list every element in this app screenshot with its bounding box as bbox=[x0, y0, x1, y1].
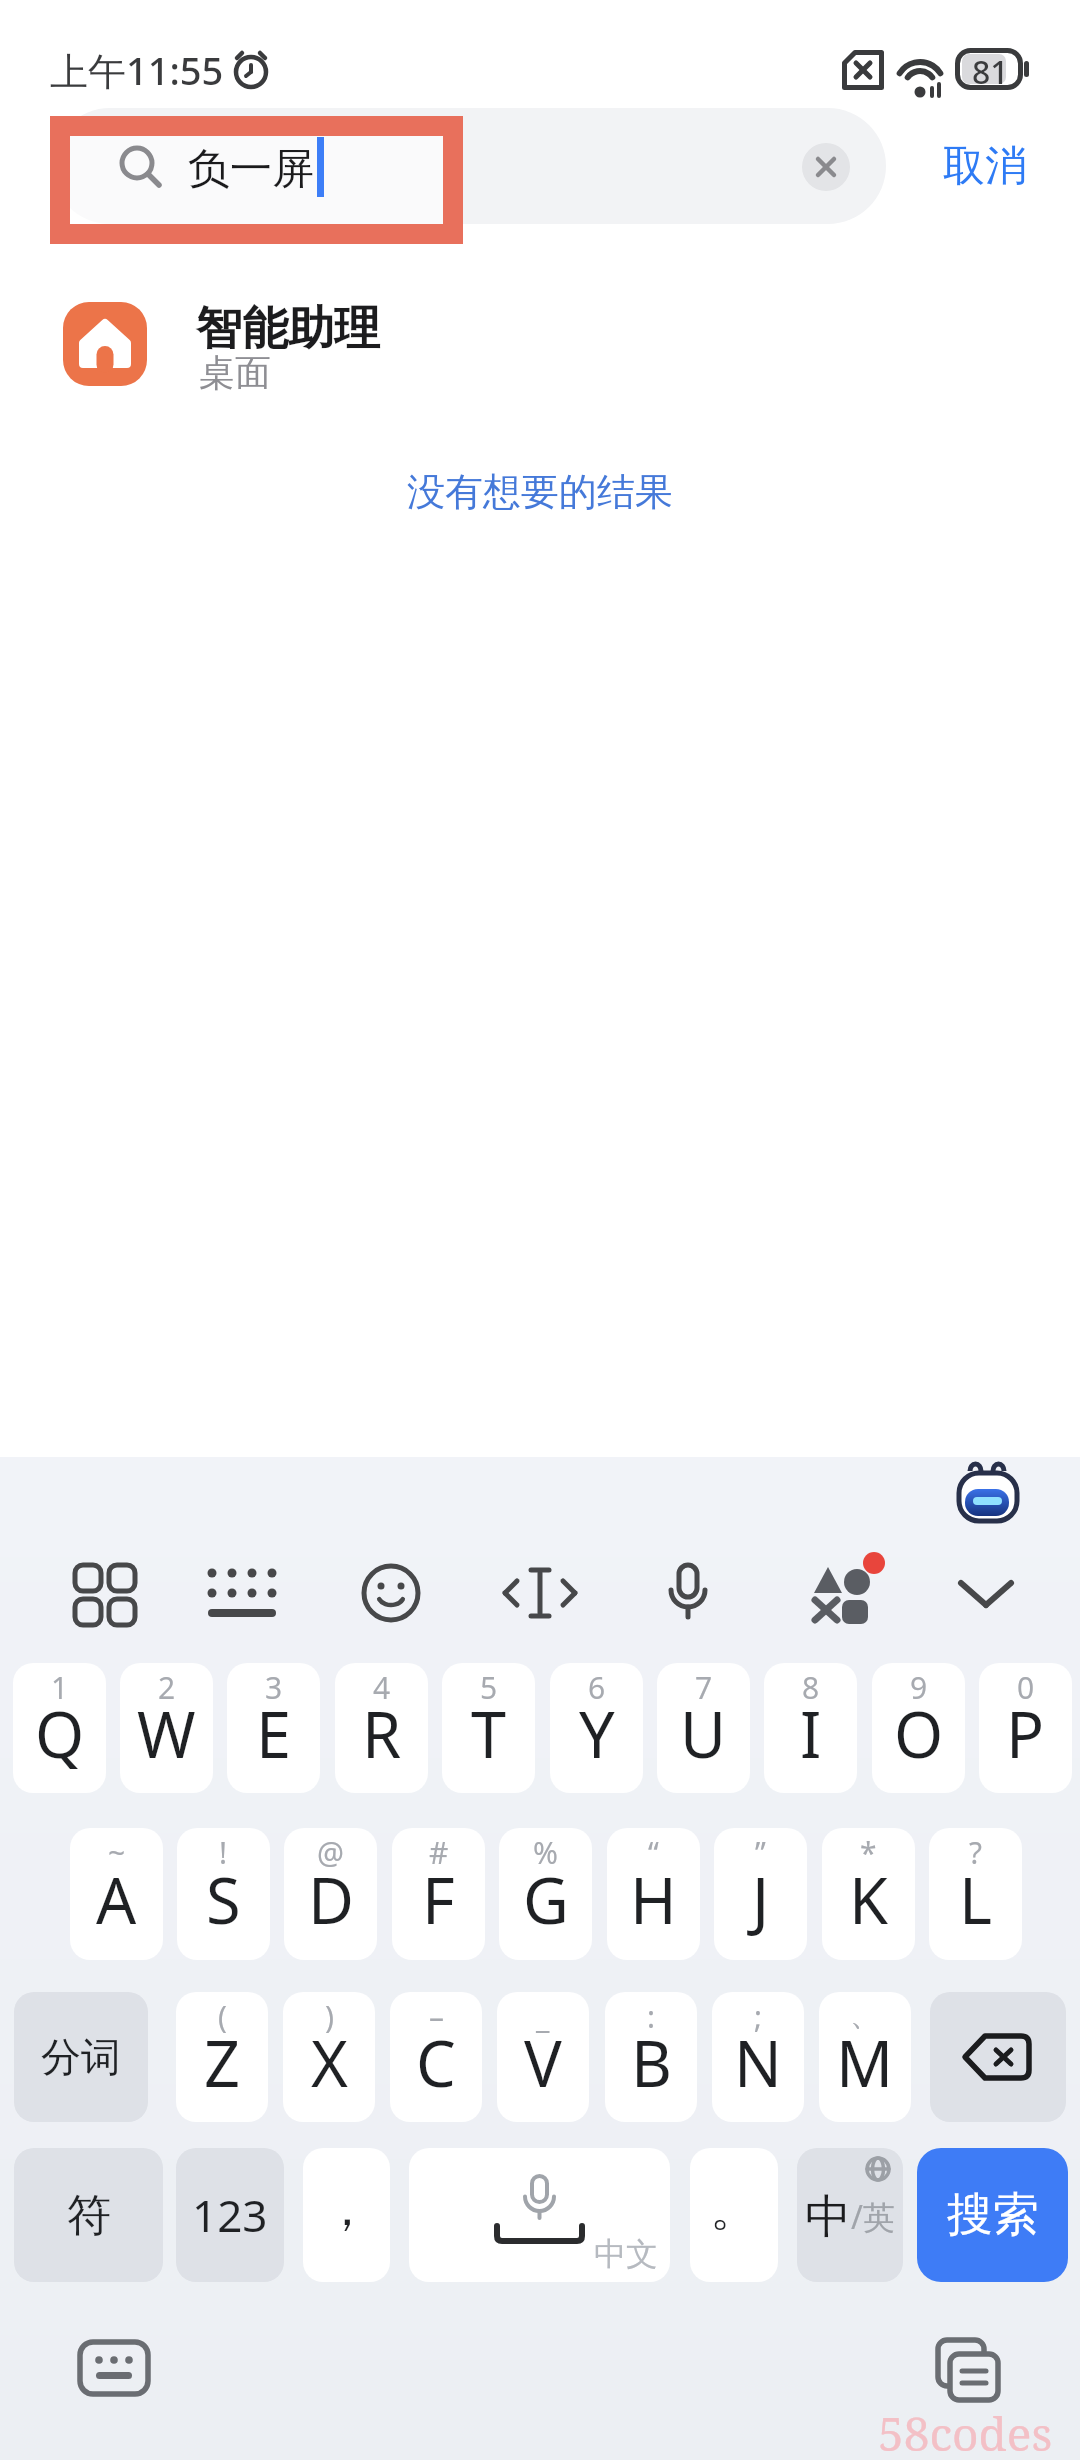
button[interactable]: 0 bbox=[979, 1663, 1072, 1793]
staticText: 符 bbox=[67, 2188, 111, 2243]
button[interactable] bbox=[930, 1992, 1066, 2122]
staticText: 。 bbox=[710, 2179, 758, 2239]
staticText: F bbox=[422, 1857, 455, 1943]
button[interactable]: % bbox=[499, 1828, 592, 1960]
button[interactable] bbox=[60, 2325, 170, 2415]
staticText: 分词 bbox=[41, 2032, 121, 2082]
staticText: 9 bbox=[910, 1667, 928, 1708]
button[interactable]: _ bbox=[497, 1992, 589, 2122]
button[interactable]: 中 bbox=[797, 2148, 903, 2282]
staticText: 2 bbox=[158, 1667, 176, 1708]
staticText: J bbox=[752, 1857, 770, 1943]
button[interactable]: 取消 bbox=[930, 130, 1040, 202]
button[interactable]: # bbox=[392, 1828, 485, 1960]
button[interactable]: 1 bbox=[13, 1663, 106, 1793]
staticText: V bbox=[524, 2020, 562, 2106]
staticText: Y bbox=[579, 1691, 615, 1777]
staticText: M bbox=[836, 2020, 894, 2106]
button[interactable]: 9 bbox=[872, 1663, 965, 1793]
staticText: 取消 bbox=[943, 140, 1027, 193]
button[interactable]: ~ bbox=[70, 1828, 163, 1960]
staticText: “ bbox=[648, 1832, 659, 1873]
button[interactable]: 4 bbox=[335, 1663, 428, 1793]
button[interactable]: “ bbox=[607, 1828, 700, 1960]
button[interactable] bbox=[0, 290, 1080, 400]
button[interactable]: 没有想要的结果 bbox=[407, 468, 673, 516]
button[interactable]: ; bbox=[712, 1992, 804, 2122]
button[interactable]: 5 bbox=[442, 1663, 535, 1793]
staticText: 、 bbox=[850, 1996, 880, 2034]
staticText: : bbox=[647, 1996, 656, 2037]
staticText: 6 bbox=[588, 1667, 606, 1708]
button[interactable]: ! bbox=[177, 1828, 270, 1960]
staticText: ， bbox=[323, 2179, 371, 2239]
staticText: 3 bbox=[265, 1667, 283, 1708]
button[interactable]: 6 bbox=[550, 1663, 643, 1793]
button[interactable] bbox=[952, 1458, 1024, 1530]
staticText: 智能助理 bbox=[196, 300, 380, 358]
button[interactable] bbox=[930, 1545, 1040, 1645]
button[interactable] bbox=[633, 1545, 743, 1645]
staticText: T bbox=[471, 1691, 507, 1777]
button[interactable]: – bbox=[390, 1992, 482, 2122]
staticText: 81 bbox=[972, 50, 1009, 94]
staticText: 中 bbox=[805, 2188, 851, 2246]
button[interactable]: 7 bbox=[657, 1663, 750, 1793]
button[interactable] bbox=[785, 1545, 895, 1645]
button[interactable]: 。 bbox=[690, 2148, 778, 2282]
staticText: L bbox=[959, 1857, 993, 1943]
staticText: 8 bbox=[802, 1667, 820, 1708]
staticText: 7 bbox=[695, 1667, 713, 1708]
button[interactable]: 搜索 bbox=[917, 2148, 1068, 2282]
button[interactable]: * bbox=[822, 1828, 915, 1960]
button[interactable]: @ bbox=[284, 1828, 377, 1960]
staticText: S bbox=[206, 1857, 241, 1943]
staticText: P bbox=[1006, 1691, 1045, 1777]
button[interactable]: 中文 bbox=[409, 2148, 670, 2282]
staticText: ( bbox=[218, 1996, 227, 2037]
staticText: Q bbox=[35, 1691, 85, 1777]
button[interactable]: ” bbox=[714, 1828, 807, 1960]
staticText: 5 bbox=[480, 1667, 498, 1708]
button[interactable]: ) bbox=[283, 1992, 375, 2122]
button[interactable]: 123 bbox=[176, 2148, 284, 2282]
staticText: – bbox=[429, 1996, 444, 2037]
staticText: 搜索 bbox=[947, 2186, 1039, 2244]
button[interactable]: 、 bbox=[819, 1992, 911, 2122]
button[interactable]: ， bbox=[303, 2148, 390, 2282]
staticText: B bbox=[631, 2020, 672, 2106]
button[interactable] bbox=[485, 1545, 595, 1645]
staticText: E bbox=[256, 1691, 292, 1777]
button[interactable] bbox=[52, 108, 886, 224]
button[interactable] bbox=[802, 143, 850, 191]
staticText: 123 bbox=[192, 2185, 268, 2245]
staticText: N bbox=[734, 2020, 782, 2106]
button[interactable]: ( bbox=[176, 1992, 268, 2122]
button[interactable]: 8 bbox=[764, 1663, 857, 1793]
staticText: I bbox=[800, 1691, 822, 1777]
staticText: * bbox=[860, 1832, 877, 1873]
staticText: 上午11:55 bbox=[50, 44, 224, 96]
staticText: 58codes bbox=[878, 2402, 1053, 2460]
staticText: 0 bbox=[1017, 1667, 1035, 1708]
button[interactable]: 分词 bbox=[14, 1992, 148, 2122]
button[interactable] bbox=[187, 1545, 297, 1645]
button[interactable]: 3 bbox=[227, 1663, 320, 1793]
staticText: @ bbox=[317, 1832, 344, 1873]
staticText: U bbox=[680, 1691, 727, 1777]
staticText: O bbox=[894, 1691, 944, 1777]
button[interactable]: 2 bbox=[120, 1663, 213, 1793]
staticText: _ bbox=[536, 1996, 550, 2037]
button[interactable]: ? bbox=[929, 1828, 1022, 1960]
staticText: D bbox=[308, 1857, 354, 1943]
staticText: 负一屏 bbox=[188, 143, 314, 196]
button[interactable] bbox=[915, 2325, 1025, 2415]
staticText: A bbox=[96, 1857, 137, 1943]
staticText: K bbox=[849, 1857, 888, 1943]
staticText: ) bbox=[325, 1996, 334, 2037]
button[interactable] bbox=[50, 1545, 160, 1645]
button[interactable]: 符 bbox=[14, 2148, 163, 2282]
button[interactable] bbox=[336, 1545, 446, 1645]
button[interactable]: : bbox=[605, 1992, 697, 2122]
staticText: H bbox=[630, 1857, 677, 1943]
